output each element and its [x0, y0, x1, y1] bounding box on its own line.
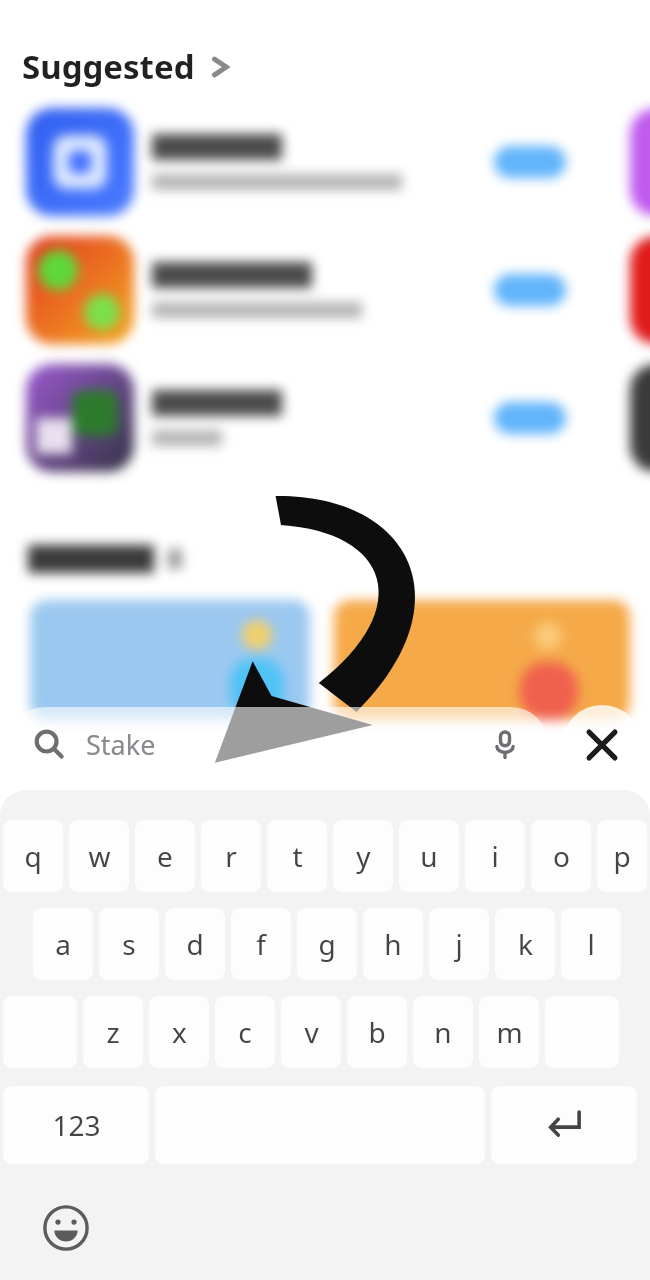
button[interactable]: 123: [3, 1086, 149, 1164]
staticText: v: [304, 1013, 319, 1051]
staticText: r: [225, 837, 237, 875]
staticText: d: [186, 925, 204, 963]
staticText: b: [368, 1013, 386, 1051]
button[interactable]: a: [33, 908, 93, 980]
button[interactable]: o: [531, 820, 591, 892]
button[interactable]: u: [399, 820, 459, 892]
button[interactable]: c: [215, 996, 275, 1068]
staticText: k: [518, 925, 533, 963]
button[interactable]: f: [231, 908, 291, 980]
button[interactable]: b: [347, 996, 407, 1068]
button[interactable]: Voice search: [488, 727, 522, 761]
button[interactable]: j: [429, 908, 489, 980]
staticText: 123: [52, 1106, 101, 1144]
staticText: o: [553, 837, 570, 875]
staticText: l: [587, 925, 595, 963]
staticText: a: [55, 925, 71, 963]
button[interactable]: k: [495, 908, 555, 980]
staticText: m: [496, 1013, 523, 1051]
staticText: z: [106, 1013, 120, 1051]
staticText: w: [88, 837, 111, 875]
staticText: t: [292, 837, 303, 875]
button[interactable]: Enter: [491, 1086, 637, 1164]
staticText: y: [356, 837, 371, 875]
staticText: u: [420, 837, 438, 875]
staticText: n: [434, 1013, 452, 1051]
staticText: g: [318, 925, 336, 963]
button[interactable]: i: [465, 820, 525, 892]
staticText: x: [172, 1013, 187, 1051]
button[interactable]: h: [363, 908, 423, 980]
staticText: i: [491, 837, 499, 875]
button[interactable]: n: [413, 996, 473, 1068]
button[interactable]: w: [69, 820, 129, 892]
staticText: j: [455, 925, 463, 963]
button[interactable]: t: [267, 820, 327, 892]
button[interactable]: d: [165, 908, 225, 980]
button[interactable]: x: [149, 996, 209, 1068]
button[interactable]: z: [83, 996, 143, 1068]
button[interactable]: g: [297, 908, 357, 980]
button[interactable]: p: [597, 820, 647, 892]
button[interactable]: e: [135, 820, 195, 892]
staticText: h: [384, 925, 402, 963]
staticText: e: [157, 837, 173, 875]
button[interactable]: Emoji: [32, 1194, 100, 1262]
staticText: p: [613, 837, 631, 875]
button[interactable]: y: [333, 820, 393, 892]
button[interactable]: v: [281, 996, 341, 1068]
button[interactable]: Stake: [8, 707, 548, 781]
staticText: s: [122, 925, 136, 963]
staticText: q: [24, 837, 42, 875]
button[interactable]: l: [561, 908, 621, 980]
button[interactable]: s: [99, 908, 159, 980]
button[interactable]: Close search: [562, 705, 642, 785]
button[interactable]: Suggested: [22, 44, 231, 89]
button[interactable]: r: [201, 820, 261, 892]
button[interactable]: q: [3, 820, 63, 892]
staticText: f: [256, 925, 266, 963]
staticText: Stake: [86, 726, 156, 763]
staticText: c: [238, 1013, 252, 1051]
staticText: Suggested: [22, 44, 195, 89]
button[interactable]: m: [479, 996, 539, 1068]
